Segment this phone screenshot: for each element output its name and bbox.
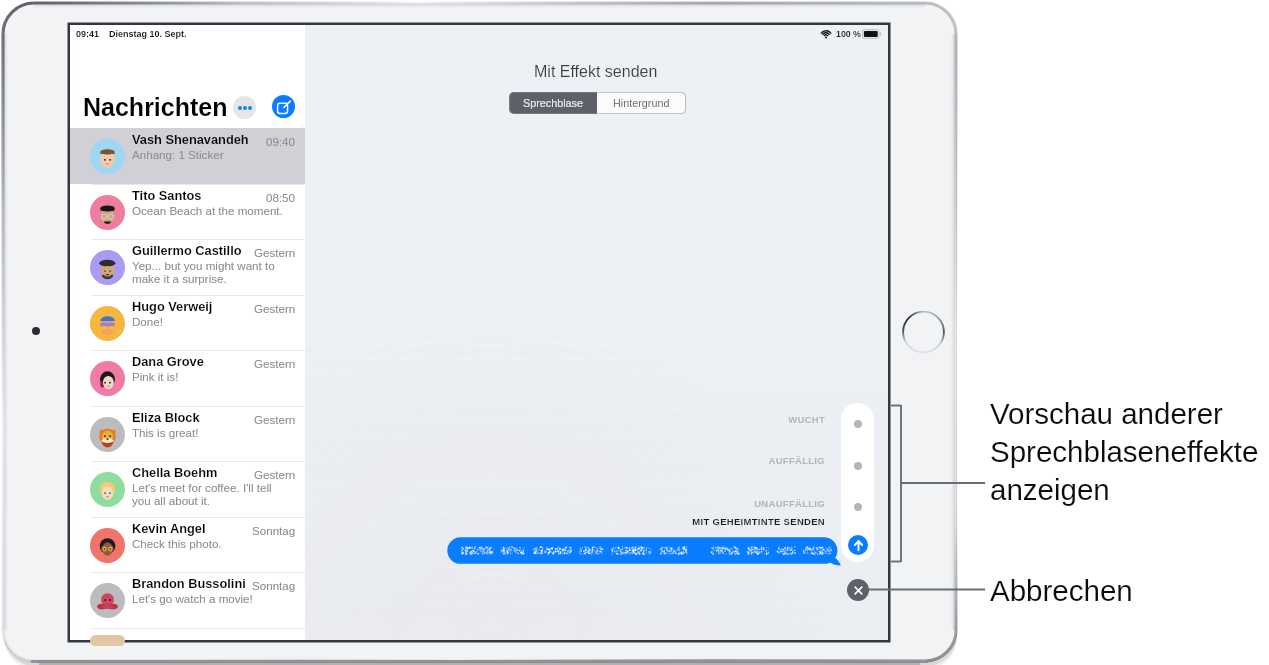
staticText: Mit Effekt senden [534,63,658,81]
staticText: Check this photo. [132,537,222,550]
staticText: Gestern [254,357,296,370]
staticText: Gestern [254,302,296,315]
button[interactable]: Chella Boehm [70,461,305,517]
staticText: Let's meet for coffee. I'll tell [132,481,272,494]
staticText: Done! [132,315,163,328]
staticText: Guillermo Castillo [132,243,242,257]
button[interactable]: Sprechblase [509,92,597,114]
button[interactable]: Brandon Bussolini [70,572,305,628]
button[interactable] [70,628,305,639]
staticText: Sonntag [252,579,296,592]
button[interactable]: Guillermo Castillo [70,239,305,295]
button[interactable]: Weitere Optionen [233,96,256,119]
staticText: you all about it. [132,494,210,507]
staticText: 08:50 [266,191,296,204]
button[interactable]: Dana Grove [70,350,305,406]
staticText: Yep... but you might want to [132,259,275,272]
staticText: Kevin Angel [132,521,206,535]
staticText: Vash Shenavandeh [132,132,249,146]
button[interactable]: Vash Shenavandeh [70,128,305,184]
staticText: make it a surprise. [132,272,227,285]
staticText: Gestern [254,413,296,426]
staticText: Hugo Verweij [132,299,213,313]
staticText: Dana Grove [132,354,204,368]
staticText: Let's go watch a movie! [132,592,253,605]
staticText: WUCHT [555,414,825,425]
staticText: This is great! [132,426,199,439]
button[interactable]: Kevin Angel [70,517,305,573]
staticText: 09:41 [76,29,100,39]
button[interactable]: Tito Santos [70,184,305,240]
staticText: Pink it is! [132,370,179,383]
staticText: Gestern [254,246,296,259]
staticText: UNAUFFÄLLIG [555,498,825,509]
staticText: Eliza Block [132,410,200,424]
button[interactable]: Neue Nachricht verfassen [272,95,295,118]
button[interactable]: Abbrechen [847,579,869,601]
staticText: AUFFÄLLIG [555,455,825,466]
staticText: Brandon Bussolini [132,576,246,590]
staticText: Sprechblase [523,97,584,109]
staticText: 09:40 [266,135,296,148]
staticText: Gestern [254,468,296,481]
staticText: MIT GEHEIMTINTE SENDEN [555,516,825,527]
staticText: Chella Boehm [132,465,218,479]
button[interactable]: Eliza Block [70,406,305,462]
staticText: Tito Santos [132,188,202,202]
staticText: Dienstag 10. Sept. [109,29,187,39]
staticText: Ocean Beach at the moment. [132,204,283,217]
staticText: Hintergrund [613,97,670,109]
staticText: Anhang: 1 Sticker [132,148,224,161]
staticText: Nachrichten [83,93,228,121]
staticText: Vorschau anderer Sprechblaseneffekte anz… [990,397,1269,506]
staticText: Abbrechen [990,574,1133,607]
button[interactable]: Hintergrund [597,92,686,114]
staticText: 100 % [836,29,861,39]
button[interactable]: Senden [848,535,868,555]
button[interactable]: Hugo Verweij [70,295,305,351]
staticText: Sonntag [252,524,296,537]
